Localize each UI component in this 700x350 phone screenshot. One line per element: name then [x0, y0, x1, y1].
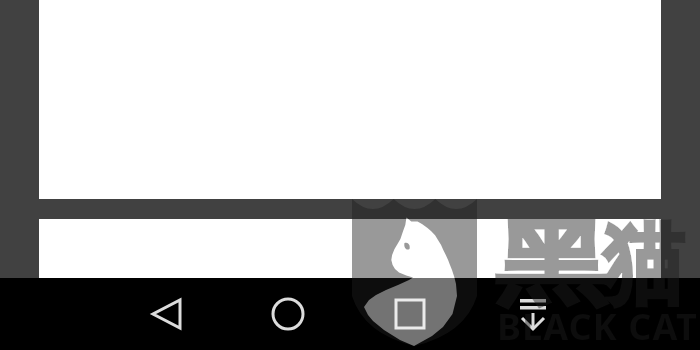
staticText: 黑 — [495, 208, 607, 321]
staticText: 猫 — [603, 208, 683, 321]
staticText: BLACK CAT — [497, 302, 698, 350]
